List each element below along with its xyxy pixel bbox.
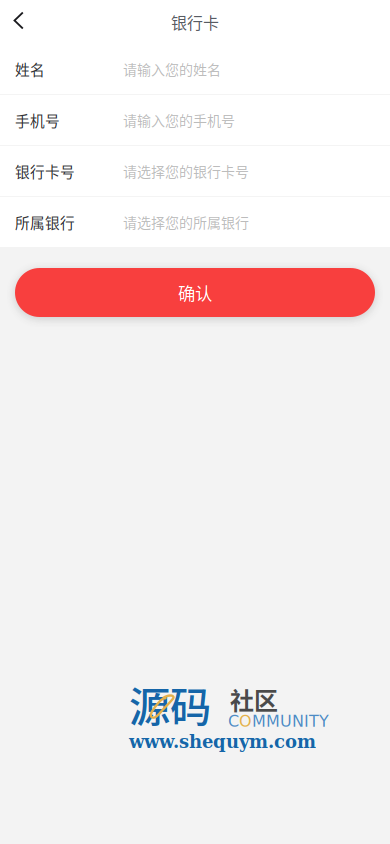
staticText: 源码	[129, 674, 211, 734]
button[interactable]: 姓名	[0, 44, 390, 94]
staticText: 请选择您的银行卡号	[123, 161, 249, 181]
staticText: 所属银行	[15, 211, 75, 233]
staticText: 银行卡号	[15, 160, 75, 182]
staticText: 社区	[230, 682, 278, 717]
staticText: www.shequym.com	[129, 731, 316, 752]
staticText: 请输入您的姓名	[123, 59, 221, 79]
staticText: C	[228, 712, 239, 731]
button[interactable]: 银行卡号	[0, 146, 390, 196]
staticText: 手机号	[15, 109, 60, 131]
staticText: 银行卡	[171, 10, 219, 34]
staticText: 请输入您的手机号	[123, 110, 235, 130]
button[interactable]: 确认	[15, 268, 375, 317]
staticText: 请选择您的所属银行	[123, 212, 249, 232]
button[interactable]: Back	[0, 0, 38, 44]
button[interactable]: 手机号	[0, 95, 390, 145]
staticText: 确认	[178, 280, 212, 305]
staticText: MMUNITY	[252, 712, 329, 731]
button[interactable]: 所属银行	[0, 197, 390, 247]
staticText: O	[239, 712, 252, 731]
staticText: 姓名	[15, 58, 45, 80]
